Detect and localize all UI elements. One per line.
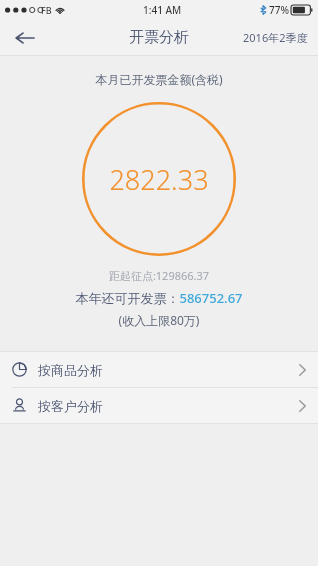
staticText: 本年还可开发票：586752.67 xyxy=(0,289,318,307)
staticText: 按商品分析 xyxy=(38,362,103,378)
button[interactable]: 按客户分析 xyxy=(0,388,318,423)
staticText: 1:41 AM xyxy=(143,3,182,17)
button[interactable]: 2016年2季度 xyxy=(233,20,318,55)
staticText: 本月已开发票金额(含税) xyxy=(0,71,318,87)
staticText: 77% xyxy=(269,3,289,17)
staticText: 2822.33 xyxy=(109,161,209,198)
staticText: 距起征点:129866.37 xyxy=(0,268,318,283)
staticText: (收入上限80万) xyxy=(0,312,318,328)
staticText: FB xyxy=(41,4,52,16)
staticText: 开票分析 xyxy=(129,28,189,47)
button[interactable]: Back xyxy=(0,20,48,55)
staticText: 2016年2季度 xyxy=(243,30,308,45)
staticText: 按客户分析 xyxy=(38,398,103,414)
button[interactable]: 按商品分析 xyxy=(0,352,318,387)
